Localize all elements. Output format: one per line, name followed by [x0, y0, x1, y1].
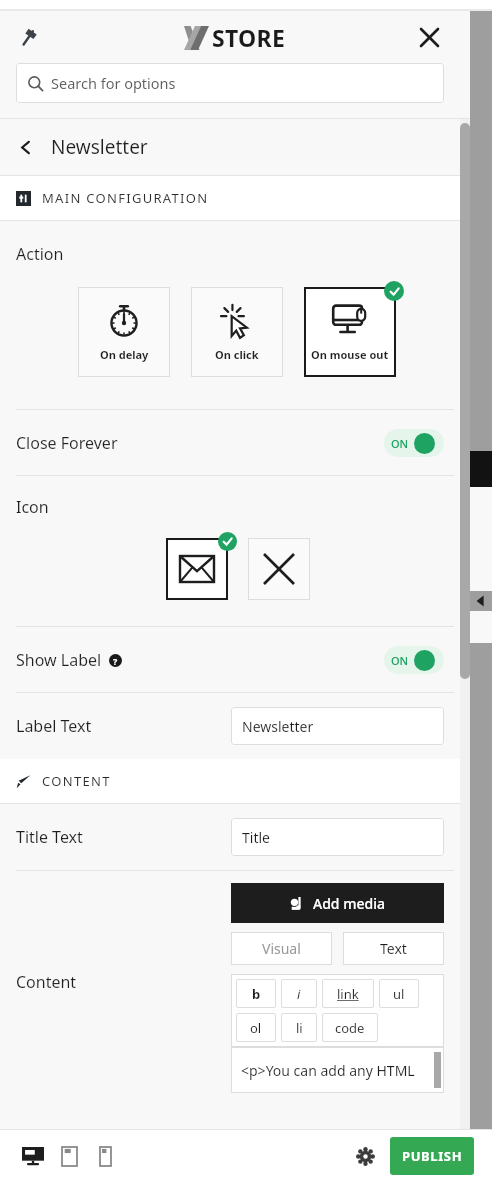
button[interactable]: Desktop preview: [18, 1141, 48, 1171]
staticText: li: [296, 1019, 303, 1037]
staticText: On mouse out: [311, 347, 389, 362]
staticText: Add media: [313, 894, 385, 913]
button[interactable]: Pin: [12, 21, 44, 53]
staticText: Text: [380, 939, 407, 958]
staticText: Show Label: [16, 649, 102, 671]
staticText: Title Text: [16, 826, 83, 848]
button[interactable]: Title: [231, 818, 444, 856]
button[interactable]: li: [281, 1013, 317, 1042]
staticText: PUBLISH: [402, 1147, 463, 1165]
button[interactable]: Search for options: [16, 63, 444, 103]
button[interactable]: ul: [379, 979, 419, 1008]
button[interactable]: i: [281, 979, 317, 1008]
button[interactable]: b: [236, 979, 276, 1008]
staticText: On click: [215, 347, 259, 362]
staticText: Icon: [16, 496, 49, 518]
staticText: Newsletter: [242, 717, 314, 736]
staticText: Close Forever: [16, 432, 118, 454]
staticText: STORE: [212, 22, 286, 53]
staticText: Content: [16, 971, 77, 993]
staticText: <p>You can add any HTML: [241, 1061, 415, 1080]
staticText: ON: [391, 653, 409, 668]
button[interactable]: Visual: [231, 932, 332, 965]
staticText: ul: [393, 985, 405, 1003]
staticText: MAIN CONFIGURATION: [42, 189, 209, 207]
button[interactable]: On mouse out: [304, 287, 396, 377]
staticText: ol: [250, 1019, 262, 1037]
button[interactable]: Help: [109, 654, 122, 667]
staticText: b: [252, 985, 261, 1003]
staticText: code: [335, 1019, 365, 1037]
button[interactable]: Settings: [348, 1139, 382, 1173]
staticText: link: [337, 985, 359, 1003]
staticText: Title: [242, 828, 270, 847]
staticText: On delay: [100, 347, 149, 362]
staticText: Label Text: [16, 715, 92, 737]
button[interactable]: Text: [343, 932, 444, 965]
staticText: ON: [391, 436, 409, 451]
button[interactable]: Envelope icon: [166, 538, 228, 600]
staticText: Action: [16, 243, 64, 265]
button[interactable]: On delay: [78, 287, 170, 377]
button[interactable]: ON: [384, 646, 444, 674]
staticText: Visual: [262, 939, 301, 958]
button[interactable]: Newsletter: [231, 707, 444, 745]
button[interactable]: code: [322, 1013, 378, 1042]
staticText: Search for options: [51, 73, 176, 93]
staticText: ?: [113, 655, 118, 667]
button[interactable]: Close icon: [248, 538, 310, 600]
button[interactable]: ol: [236, 1013, 276, 1042]
button[interactable]: On click: [191, 287, 283, 377]
button[interactable]: Tablet preview: [54, 1141, 84, 1171]
button[interactable]: Close: [414, 22, 444, 52]
button[interactable]: PUBLISH: [390, 1137, 474, 1175]
button[interactable]: Newsletter: [0, 119, 470, 175]
button[interactable]: ON: [384, 429, 444, 457]
staticText: Newsletter: [51, 134, 148, 160]
staticText: CONTENT: [42, 772, 111, 790]
button[interactable]: Add media: [231, 883, 444, 923]
button[interactable]: link: [322, 979, 374, 1008]
button[interactable]: Mobile preview: [90, 1141, 120, 1171]
staticText: i: [297, 985, 301, 1003]
